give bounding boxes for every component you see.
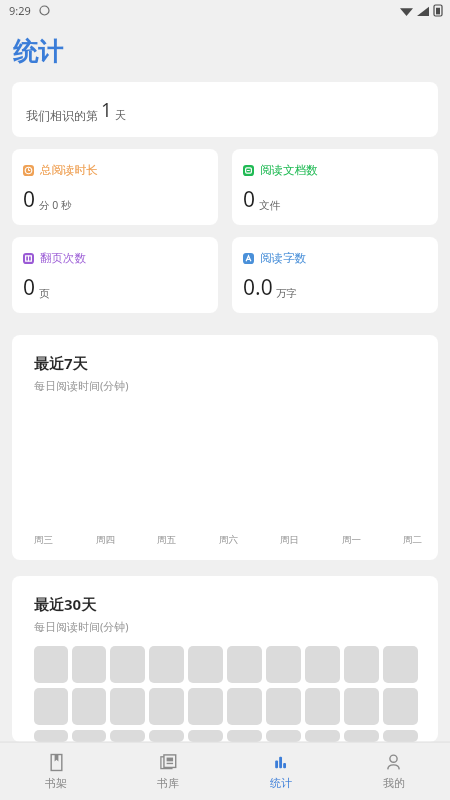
staticText: 周一	[342, 534, 361, 546]
staticText: 分 0 秒	[39, 198, 72, 212]
staticText: 每日阅读时间(分钟)	[34, 619, 129, 634]
staticText: 周三	[34, 534, 53, 546]
staticText: 书架	[45, 776, 67, 790]
other: 我的	[384, 753, 403, 772]
staticText: 我的	[383, 776, 405, 790]
staticText: 0.0	[243, 273, 273, 302]
button[interactable]: 阅读文档数	[232, 149, 438, 225]
button[interactable]: 书架	[0, 742, 112, 800]
staticText: 0	[23, 273, 36, 302]
button[interactable]: 总阅读时长	[12, 149, 218, 225]
staticText: 周日	[280, 534, 299, 546]
staticText: 周六	[219, 534, 238, 546]
staticText: 1	[101, 97, 112, 123]
staticText: 最近7天	[34, 353, 88, 373]
staticText: 统计	[270, 776, 292, 790]
staticText: 周五	[157, 534, 176, 546]
staticText: 页	[39, 287, 50, 300]
staticText: 天	[115, 108, 126, 122]
staticText: 万字	[276, 287, 297, 300]
button[interactable]: 我的	[337, 742, 450, 800]
staticText: 每日阅读时间(分钟)	[34, 378, 129, 393]
button[interactable]: 最近30天	[12, 576, 438, 742]
staticText: 周二	[403, 534, 422, 546]
staticText: 阅读字数	[260, 251, 306, 265]
staticText: 统计	[13, 36, 63, 67]
button[interactable]: 书库	[112, 742, 224, 800]
staticText: 书库	[157, 776, 179, 790]
other: 书库	[159, 753, 178, 772]
button[interactable]: 翻页次数	[12, 237, 218, 313]
staticText: 翻页次数	[40, 251, 86, 265]
staticText: 总阅读时长	[40, 163, 98, 177]
staticText: 9:29	[9, 3, 31, 18]
other: 统计	[271, 753, 290, 772]
button[interactable]: 最近7天	[12, 335, 438, 560]
other: 书架	[47, 753, 66, 772]
staticText: 0	[243, 185, 256, 214]
staticText: 0	[23, 185, 36, 214]
staticText: 我们相识的第	[26, 108, 98, 123]
button[interactable]: 阅读字数	[232, 237, 438, 313]
button[interactable]: 我们相识的第	[12, 82, 438, 137]
staticText: 阅读文档数	[260, 163, 318, 177]
staticText: 文件	[259, 199, 280, 212]
button[interactable]: 统计	[224, 742, 337, 800]
staticText: 最近30天	[34, 594, 97, 614]
staticText: 周四	[96, 534, 115, 546]
